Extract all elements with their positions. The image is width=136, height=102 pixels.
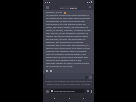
staticText: Bonjour ! Je suis	[46, 11, 63, 14]
button[interactable]: GPT-3.5	[59, 6, 78, 9]
button[interactable]: Voice input	[85, 76, 88, 79]
button[interactable]: Recents	[79, 94, 87, 102]
button[interactable]: Back	[50, 94, 58, 102]
button[interactable]: Account	[46, 90, 49, 93]
staticText: GPT-4	[70, 6, 77, 9]
staticText: GPT-3.5	[60, 6, 69, 9]
button[interactable]	[45, 73, 92, 79]
button[interactable]: Tabs	[87, 90, 89, 92]
staticText: un assistant virtuel concu pour repondre…	[46, 14, 91, 68]
button[interactable]: chat.openai.com/chat	[50, 89, 85, 93]
staticText: ChatGPT may produce inaccurate informati…	[45, 80, 92, 85]
staticText: chat.openai.com/chat	[54, 90, 75, 93]
button[interactable]: Home	[65, 94, 73, 102]
button[interactable]: Send	[89, 76, 92, 79]
